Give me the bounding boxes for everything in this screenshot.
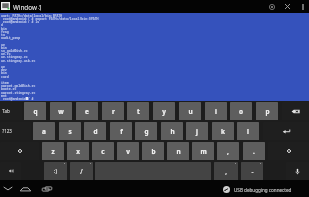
staticText: . [253,147,255,156]
staticText: c [101,147,105,156]
staticText: t [137,107,140,116]
button[interactable]: m [192,142,214,160]
button[interactable]: t [127,102,149,120]
button[interactable]: Shift [0,142,39,160]
button[interactable]: s [59,122,81,140]
staticText: audit_prop [1,36,21,40]
staticText: f [120,127,123,136]
button[interactable]: Shift [268,142,309,160]
staticText: ue [1,43,5,47]
button[interactable]: e [76,102,98,120]
staticText: ue.stingray.rc [1,55,28,59]
button[interactable]: p [256,102,278,120]
staticText: x [76,147,80,156]
button[interactable]: c [92,142,114,160]
button[interactable]: ?123 [0,122,31,140]
staticText: / [80,167,83,176]
staticText: ue [1,65,5,69]
staticText: d [93,127,98,136]
staticText: Tab [2,108,10,114]
staticText: USB debugging connected [234,187,292,193]
staticText: u [188,107,193,116]
staticText: dev [1,68,7,72]
button[interactable]: u [179,102,201,120]
button[interactable]: Home [18,180,33,197]
button[interactable]: Recent apps [39,180,54,197]
staticText: , [227,147,229,156]
staticText: i [215,107,217,116]
staticText: p [265,107,270,116]
button[interactable]: Window icon [1,2,10,10]
staticText: l [247,127,249,136]
button[interactable]: Voice input [286,162,309,180]
staticText: :) [54,168,57,175]
button[interactable]: x [67,142,89,160]
button[interactable]: b [142,142,164,160]
button[interactable]: o [230,102,252,120]
button[interactable]: a [33,122,55,140]
staticText: e [85,107,89,116]
button[interactable]: :) [44,162,67,180]
button[interactable]: d [84,122,106,140]
staticText: v [126,147,130,156]
button[interactable]: z [42,142,64,160]
staticText: a [42,127,46,136]
button[interactable]: y [153,102,175,120]
button[interactable]: Record [265,0,278,13]
staticText: , [225,167,227,176]
button[interactable]: Backspace [282,102,309,120]
button[interactable]: / [70,162,93,180]
button[interactable]: Tab [0,102,22,120]
staticText: ?123 [2,128,12,134]
button[interactable]: w [50,102,72,120]
staticText: Window 1 [13,3,43,12]
staticText: bin [1,71,7,75]
button[interactable]: Enter [263,122,309,140]
staticText: root@android:/ # ls [1,20,40,24]
button[interactable]: Close [281,0,294,13]
staticText: b [151,147,156,156]
button[interactable]: , [214,162,238,180]
button[interactable]: g [135,122,157,140]
staticText: m [200,147,207,156]
button[interactable]: j [186,122,208,140]
button[interactable]: Back [0,180,15,197]
staticText: root@android:/ # export PATH=/data/local… [1,17,99,21]
button[interactable]: k [212,122,234,140]
button[interactable]: q [24,102,46,120]
staticText: ue.rc [1,52,11,56]
staticText: - [251,167,254,176]
staticText: so_gold0ish.rc [1,49,28,53]
button[interactable]: v [117,142,139,160]
button[interactable]: . [243,142,265,160]
staticText: r [112,107,115,116]
staticText: w [58,107,64,116]
staticText: item [1,81,9,85]
staticText: n [176,147,181,156]
staticText: o [239,107,243,116]
staticText: bin [1,46,7,50]
staticText: y [162,107,166,116]
staticText: h [170,127,175,136]
button[interactable]: More options [296,0,309,13]
staticText: s [68,127,72,136]
button[interactable]: l [237,122,259,140]
staticText: ta [1,33,5,37]
button[interactable]: Mute [0,162,21,180]
button[interactable]: i [205,102,227,120]
staticText: card [1,75,9,79]
button[interactable]: f [110,122,132,140]
button[interactable]: r [102,102,124,120]
button[interactable]: n [167,142,189,160]
button[interactable]: - [241,162,263,180]
button[interactable]: , [217,142,239,160]
staticText: d [1,23,3,27]
staticText: frag [1,30,9,34]
staticText: boote.rc [1,87,17,91]
staticText: q [33,107,38,116]
staticText: root@android:/ # [1,97,36,101]
staticText: j [196,127,198,136]
button[interactable]: h [161,122,183,140]
staticText: mnt [1,94,7,98]
